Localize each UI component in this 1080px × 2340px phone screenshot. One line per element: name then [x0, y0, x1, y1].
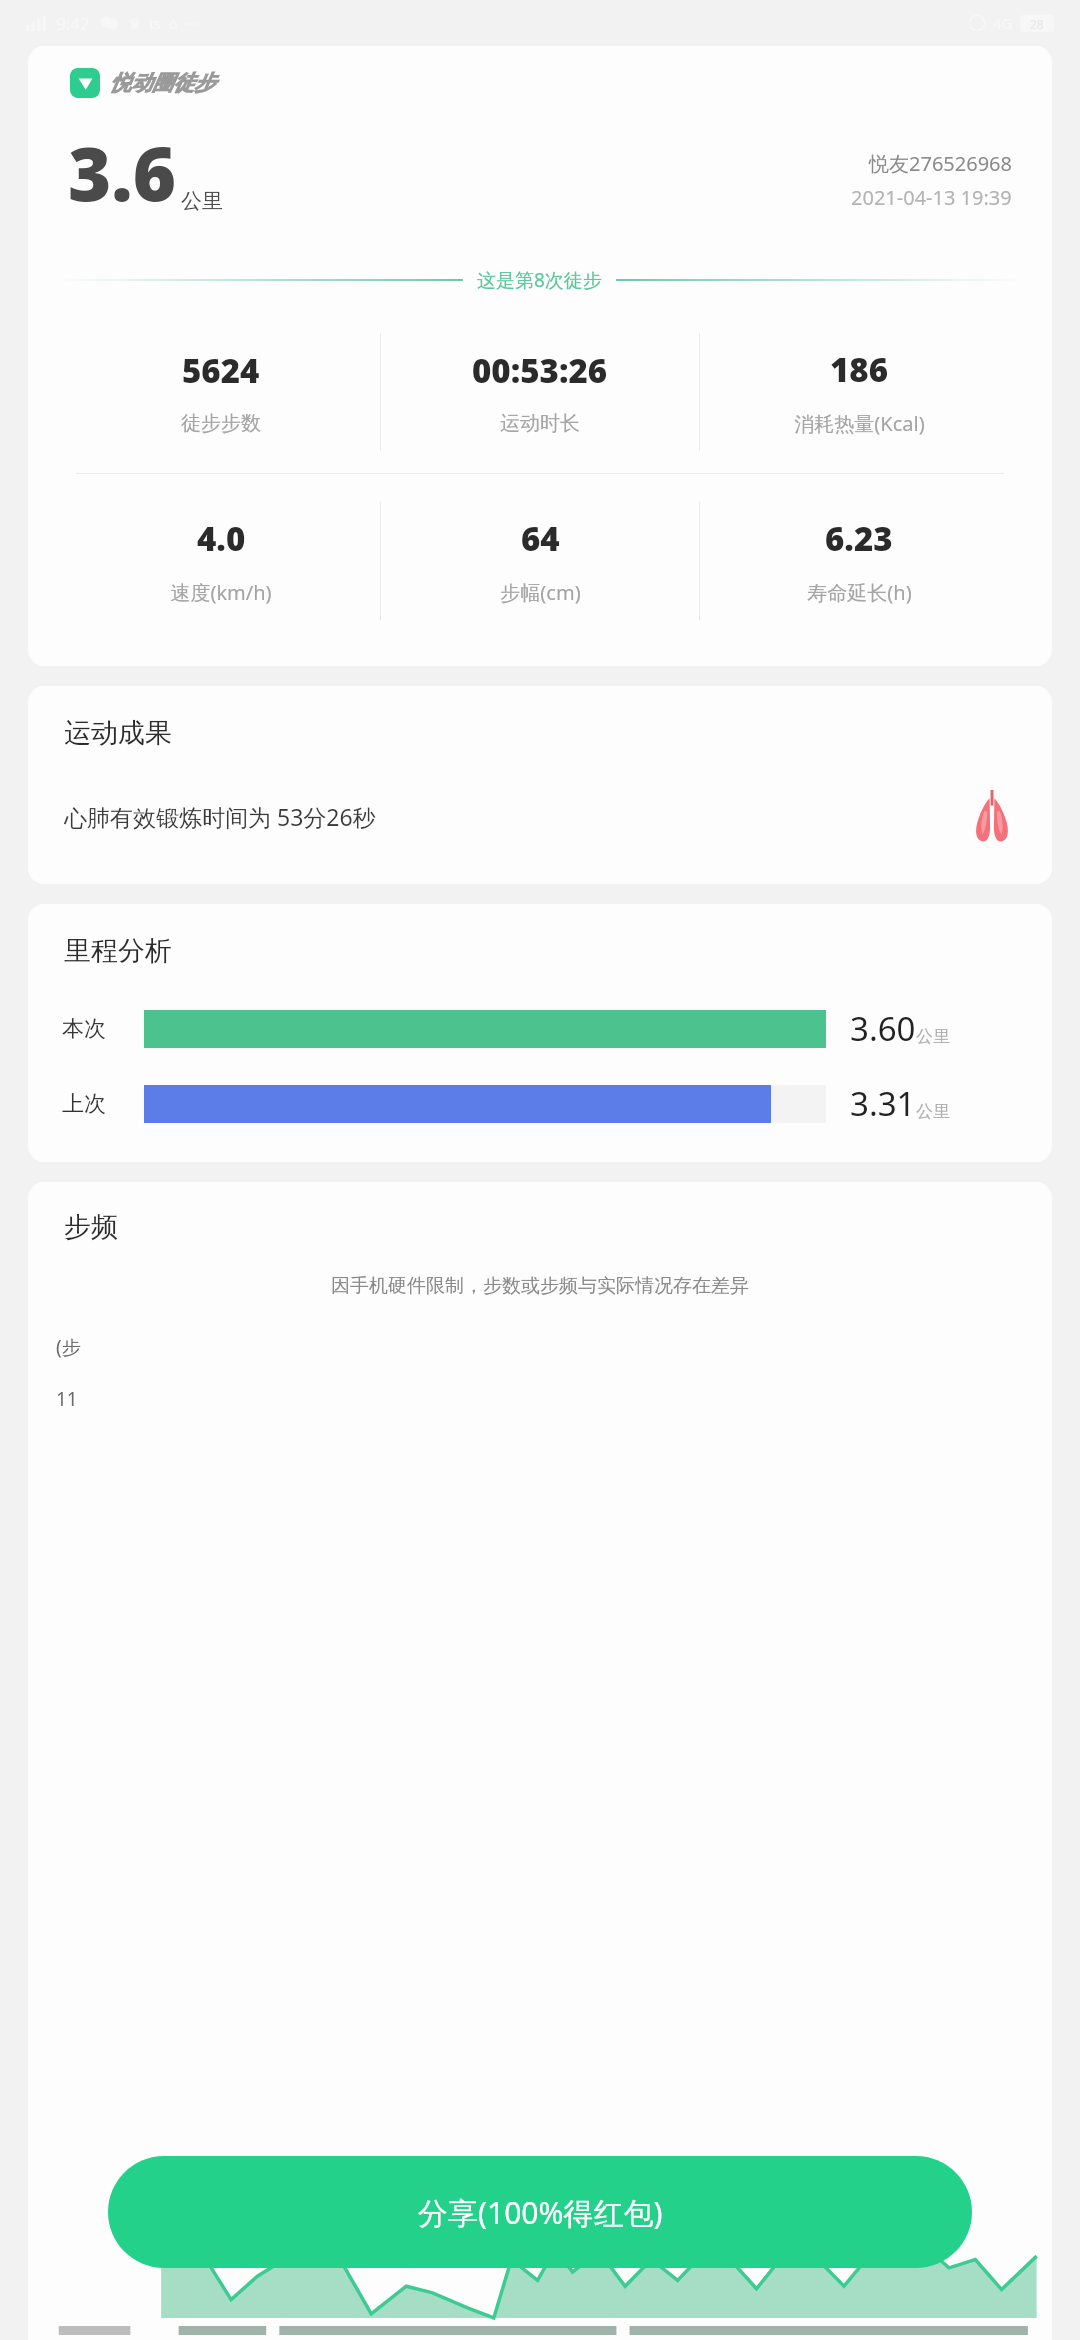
staticText: 里程分析: [64, 934, 172, 968]
staticText: 分享(100%得红包): [418, 2192, 663, 2233]
staticText: 11: [56, 1386, 78, 1412]
staticText: 5624: [182, 348, 260, 393]
staticText: 上次: [62, 1090, 144, 1118]
staticText: 6.23: [825, 516, 893, 561]
staticText: 速度(km/h): [170, 579, 272, 606]
staticText: 这是第8次徒步: [477, 267, 602, 293]
staticText: 运动成果: [64, 716, 172, 750]
staticText: 3.60: [850, 1006, 916, 1051]
staticText: 徒步步数: [181, 411, 261, 436]
button[interactable]: 分享(100%得红包): [108, 2156, 972, 2268]
staticText: 3.6: [68, 122, 177, 223]
staticText: 4.0: [197, 516, 246, 561]
staticText: 28: [1030, 16, 1044, 32]
staticText: (步: [56, 1334, 81, 1360]
staticText: 公里: [181, 188, 223, 214]
staticText: 186: [830, 347, 889, 392]
staticText: 00:53:26: [472, 348, 608, 393]
staticText: 消耗热量(Kcal): [794, 410, 925, 437]
staticText: 3.31: [850, 1081, 916, 1126]
staticText: 运动时长: [500, 411, 580, 436]
staticText: 本次: [62, 1015, 144, 1043]
staticText: 步幅(cm): [500, 579, 581, 606]
staticText: 2021-04-13 19:39: [851, 184, 1012, 211]
staticText: 公里: [916, 1101, 950, 1122]
staticText: 寿命延长(h): [807, 579, 912, 606]
staticText: 悦动圈徒步: [110, 70, 215, 96]
staticText: 64: [521, 516, 560, 561]
staticText: 心肺有效锻炼时间为 53分26秒: [64, 801, 376, 832]
staticText: 公里: [916, 1026, 950, 1047]
staticText: 步频: [64, 1210, 118, 1244]
staticText: 因手机硬件限制，步数或步频与实际情况存在差异: [48, 1274, 1032, 1298]
staticText: 悦友276526968: [869, 150, 1012, 177]
